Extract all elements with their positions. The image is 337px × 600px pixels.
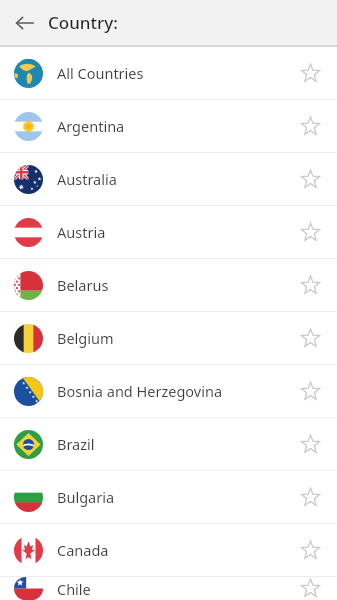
staticText: Belgium [57, 328, 288, 348]
button[interactable]: Argentina [0, 100, 337, 152]
button[interactable]: Favorite Chile [288, 577, 332, 600]
button[interactable]: Bulgaria [0, 471, 337, 523]
staticText: Country: [48, 11, 118, 34]
staticText: Bosnia and Herzegovina [57, 381, 288, 401]
staticText: Canada [57, 540, 288, 560]
button[interactable]: Back [8, 6, 42, 40]
button[interactable]: Favorite Canada [288, 528, 332, 572]
staticText: Bulgaria [57, 487, 288, 507]
staticText: Brazil [57, 434, 288, 454]
button[interactable]: Favorite All Countries [288, 51, 332, 95]
button[interactable]: Austria [0, 206, 337, 258]
staticText: Belarus [57, 275, 288, 295]
button[interactable]: Bosnia and Herzegovina [0, 365, 337, 417]
staticText: Austria [57, 222, 288, 242]
button[interactable]: All Countries [0, 47, 337, 99]
button[interactable]: Favorite Belgium [288, 316, 332, 360]
button[interactable]: Belgium [0, 312, 337, 364]
button[interactable]: Favorite Austria [288, 210, 332, 254]
button[interactable]: Favorite Bosnia and Herzegovina [288, 369, 332, 413]
button[interactable]: Favorite Belarus [288, 263, 332, 307]
button[interactable]: Canada [0, 524, 337, 576]
staticText: Australia [57, 169, 288, 189]
button[interactable]: Favorite Argentina [288, 104, 332, 148]
button[interactable]: Favorite Australia [288, 157, 332, 201]
button[interactable]: Belarus [0, 259, 337, 311]
staticText: All Countries [57, 63, 288, 83]
staticText: Chile [57, 579, 288, 599]
staticText: Argentina [57, 116, 288, 136]
button[interactable]: Favorite Brazil [288, 422, 332, 466]
button[interactable]: Favorite Bulgaria [288, 475, 332, 519]
button[interactable]: Brazil [0, 418, 337, 470]
button[interactable]: Chile [0, 577, 337, 600]
button[interactable]: Australia [0, 153, 337, 205]
